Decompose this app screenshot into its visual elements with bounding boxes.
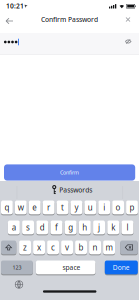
button[interactable]: d (36, 220, 48, 235)
staticText: o (116, 202, 121, 213)
staticText: d (40, 222, 45, 233)
staticText: x (37, 242, 41, 253)
button[interactable]: n (89, 240, 101, 255)
staticText: l (126, 222, 128, 233)
button[interactable]: Shift (1, 240, 16, 255)
button[interactable]: Back (4, 17, 15, 25)
button[interactable]: j (93, 220, 105, 235)
staticText: Done (113, 263, 130, 272)
staticText: u (88, 202, 93, 213)
staticText: k (111, 222, 115, 233)
button[interactable]: q (1, 200, 13, 215)
staticText: e (32, 202, 37, 213)
button[interactable]: x (33, 240, 45, 255)
staticText: Confirm (60, 169, 79, 176)
button[interactable]: e (29, 200, 41, 215)
staticText: Confirm Password (41, 15, 98, 24)
button[interactable]: l (121, 220, 133, 235)
button[interactable]: 123 (1, 260, 33, 275)
staticText: y (74, 202, 78, 213)
staticText: j (98, 222, 100, 233)
staticText: g (68, 222, 73, 233)
staticText: 10:21 (6, 2, 24, 10)
staticText: p (129, 202, 134, 213)
staticText: v (65, 242, 69, 253)
staticText: Passwords (59, 185, 92, 194)
button[interactable]: Done (105, 260, 138, 275)
button[interactable]: m (103, 240, 115, 255)
button[interactable]: c (47, 240, 59, 255)
staticText: r (47, 202, 50, 213)
staticText: m (105, 242, 112, 253)
button[interactable]: t (57, 200, 68, 215)
staticText: f (55, 222, 58, 233)
button[interactable]: i (98, 200, 110, 215)
button[interactable]: g (65, 220, 77, 235)
staticText: t (61, 202, 64, 213)
button[interactable]: space (36, 260, 95, 275)
staticText: w (18, 202, 24, 213)
button[interactable]: r (43, 200, 54, 215)
staticText: 123 (12, 264, 21, 271)
staticText: s (26, 222, 30, 233)
staticText: b (78, 242, 83, 253)
button[interactable]: y (70, 200, 82, 215)
staticText: space (62, 263, 80, 272)
button[interactable]: k (107, 220, 119, 235)
staticText: q (4, 202, 9, 213)
staticText: a (12, 222, 16, 233)
button[interactable]: b (75, 240, 87, 255)
button[interactable]: Confirm (4, 164, 135, 181)
button[interactable]: Delete (120, 240, 138, 255)
button[interactable]: h (79, 220, 91, 235)
button[interactable]: Next keyboard (15, 280, 23, 289)
staticText: i (103, 202, 105, 213)
button[interactable]: u (84, 200, 96, 215)
staticText: c (51, 242, 55, 253)
button[interactable]: v (61, 240, 73, 255)
button[interactable]: f (50, 220, 62, 235)
button[interactable]: p (126, 200, 138, 215)
button[interactable]: w (15, 200, 27, 215)
staticText: z (23, 242, 27, 253)
button[interactable]: Passwords (52, 185, 92, 194)
staticText: h (82, 222, 87, 233)
staticText: n (92, 242, 97, 253)
button[interactable]: Show password (125, 39, 131, 44)
button[interactable]: o (112, 200, 124, 215)
button[interactable]: s (22, 220, 34, 235)
button[interactable]: a (8, 220, 20, 235)
button[interactable]: Close (125, 17, 130, 22)
button[interactable]: z (19, 240, 31, 255)
